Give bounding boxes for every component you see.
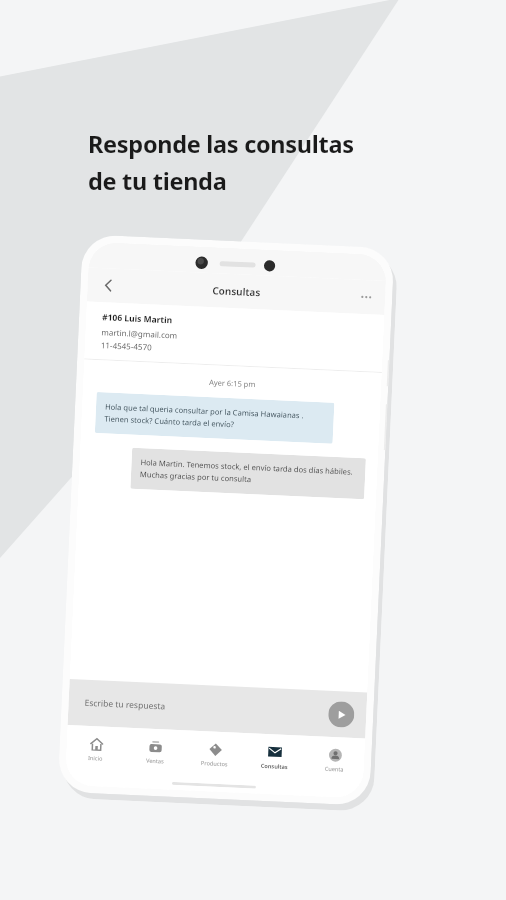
staticText: Inicio xyxy=(88,754,103,763)
staticText: de tu tienda xyxy=(88,165,227,197)
staticText: Productos xyxy=(201,759,228,768)
button[interactable]: Ventas xyxy=(125,735,185,769)
button[interactable]: Hola que tal queria consultar por la Cam… xyxy=(95,392,334,444)
button[interactable]: More options xyxy=(353,284,380,311)
button[interactable]: Back xyxy=(93,270,124,301)
staticText: Ventas xyxy=(146,757,164,765)
staticText: #106 Luis Martin xyxy=(102,311,173,326)
button[interactable]: Send xyxy=(328,701,355,728)
staticText: 11-4545-4570 xyxy=(101,339,152,352)
button[interactable]: Consultas xyxy=(244,740,305,775)
button[interactable]: Escribe tu respuesta xyxy=(84,697,166,712)
button[interactable]: Cuenta xyxy=(303,743,365,777)
staticText: martin.l@gmail.com xyxy=(101,326,178,341)
staticText: Consultas xyxy=(261,762,288,771)
staticText: Cuenta xyxy=(325,765,344,774)
staticText: Consultas xyxy=(212,283,261,299)
staticText: Hola Martin. Tenemos stock, el envío tar… xyxy=(140,457,356,490)
button[interactable]: Inicio xyxy=(66,732,126,767)
staticText: Hola que tal queria consultar por la Cam… xyxy=(104,401,325,434)
staticText: Responde las consultas xyxy=(88,128,354,160)
button[interactable]: Productos xyxy=(184,737,245,772)
button[interactable]: Hola Martin. Tenemos stock, el envío tar… xyxy=(130,448,366,499)
button[interactable]: #106 Luis Martin xyxy=(84,301,384,372)
staticText: Ayer 6:15 pm xyxy=(83,371,381,395)
